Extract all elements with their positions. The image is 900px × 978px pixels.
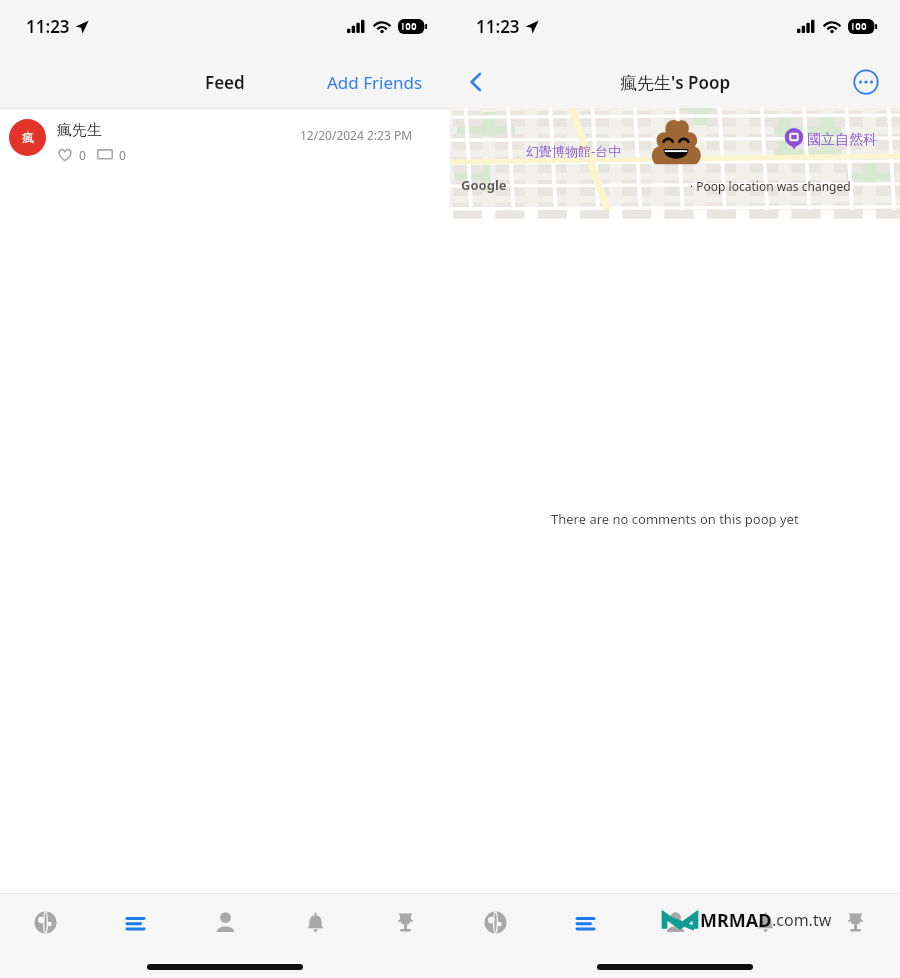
staticText: There are no comments on this poop yet [551, 510, 799, 528]
staticText: 國立自然科 [807, 131, 877, 149]
button[interactable]: Feed [90, 893, 180, 951]
staticText: 11:23 [476, 15, 520, 38]
button[interactable]: Map of poop location [450, 108, 900, 210]
staticText: Add Friends [327, 71, 423, 94]
staticText: 瘋 [22, 130, 34, 145]
button[interactable]: Feed [540, 893, 630, 951]
staticText: 11:23 [26, 15, 70, 38]
button[interactable]: More options [848, 64, 884, 100]
button[interactable]: Take photo [464, 930, 500, 966]
button[interactable]: 瘋 [0, 109, 450, 167]
button[interactable]: World [0, 893, 90, 951]
button[interactable]: Leaderboard [360, 893, 450, 951]
staticText: 0 [79, 147, 86, 163]
staticText: 瘋先生 [57, 121, 102, 140]
button[interactable]: Back [454, 60, 498, 104]
button[interactable]: Write a comment [512, 928, 838, 967]
staticText: MRMAD [700, 908, 772, 933]
button[interactable]: Profile [180, 893, 270, 951]
staticText: .com.tw [772, 909, 832, 931]
staticText: 幻覺博物館-台中 [526, 142, 622, 160]
button[interactable]: Profile [630, 893, 720, 951]
button[interactable]: Notifications [270, 893, 360, 951]
button[interactable]: Add Friends [300, 56, 450, 108]
staticText: 12/20/2024 2:23 PM [300, 127, 413, 143]
button[interactable]: Leaderboard [810, 893, 900, 951]
staticText: 瘋先生's Poop [620, 71, 731, 94]
button[interactable]: Notifications [720, 893, 810, 951]
button[interactable]: World [450, 893, 540, 951]
button[interactable]: Feed [150, 56, 300, 108]
staticText: Feed [205, 71, 245, 94]
staticText: 0 [119, 147, 126, 163]
staticText: · Poop location was changed [690, 178, 851, 194]
staticText: Google [461, 176, 507, 194]
